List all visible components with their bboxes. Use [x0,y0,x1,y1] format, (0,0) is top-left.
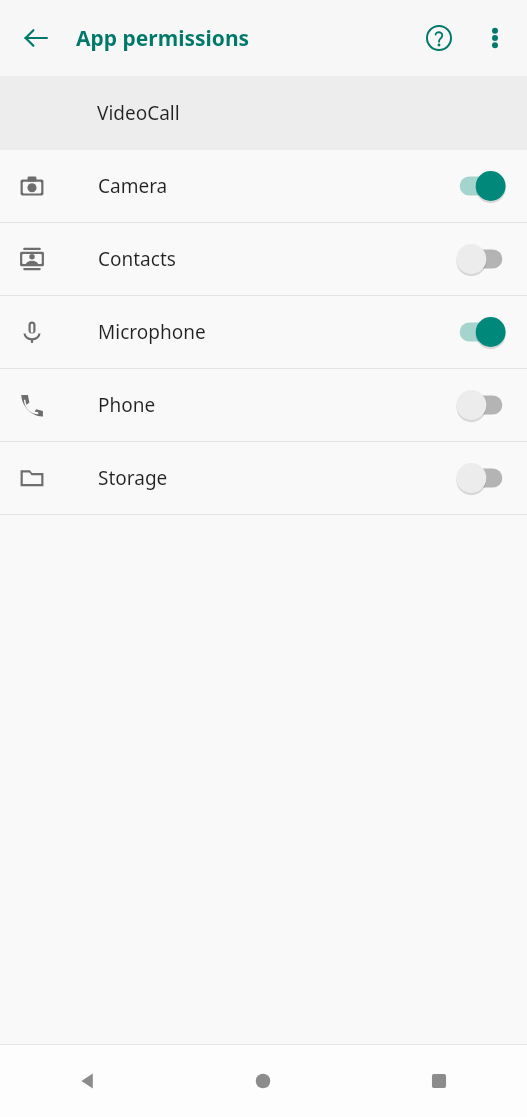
button[interactable]: Contacts permission toggle [443,223,519,295]
button[interactable]: Microphone permission toggle [443,296,519,368]
button[interactable]: Back [10,12,62,64]
button[interactable]: Phone permission toggle [443,369,519,441]
button[interactable]: Back [0,1045,175,1117]
button[interactable]: Storage [0,442,527,514]
button[interactable]: Camera [0,150,527,222]
staticText: Microphone [98,319,443,345]
button[interactable]: Camera permission toggle [443,150,519,222]
button[interactable]: Microphone [0,296,527,368]
staticText: VideoCall [97,100,180,126]
staticText: Camera [98,173,443,199]
button[interactable]: Contacts [0,223,527,295]
staticText: Phone [98,392,443,418]
button[interactable]: Storage permission toggle [443,442,519,514]
button[interactable]: Phone [0,369,527,441]
button[interactable]: Help [413,12,465,64]
staticText: Contacts [98,246,443,272]
staticText: Storage [98,465,443,491]
button[interactable]: Home [175,1045,351,1117]
button[interactable]: Recent apps [351,1045,527,1117]
staticText: App permissions [76,24,250,53]
button[interactable]: More options [471,14,519,62]
